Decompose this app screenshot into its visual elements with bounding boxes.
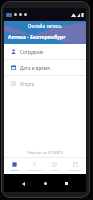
staticText: Специалисты	[26, 168, 43, 171]
staticText: Записи	[10, 168, 19, 171]
button[interactable]: Recents	[61, 178, 72, 189]
button[interactable]: Услуга	[4, 76, 86, 91]
staticText: Сотрудник	[20, 49, 44, 55]
staticText: Услуги	[50, 168, 59, 171]
button[interactable]: Back	[18, 178, 29, 189]
button[interactable]: Home	[40, 178, 51, 189]
staticText: Дата и время	[20, 65, 50, 71]
staticText: Моя запись	[68, 168, 83, 171]
button[interactable]: Моя запись	[65, 158, 86, 174]
staticText: Аптека - Екатеринбург	[8, 34, 66, 41]
button[interactable]: Услуги	[44, 158, 65, 174]
button[interactable]: Записи	[4, 158, 24, 174]
staticText: Услуга	[20, 81, 35, 87]
button[interactable]: Дата и время	[4, 60, 86, 75]
staticText: Онлайн запись	[28, 23, 62, 29]
button[interactable]: Специалисты	[24, 158, 44, 174]
button[interactable]: Сотрудник	[4, 44, 86, 59]
staticText: Работает на YCLIENTS	[27, 150, 63, 155]
